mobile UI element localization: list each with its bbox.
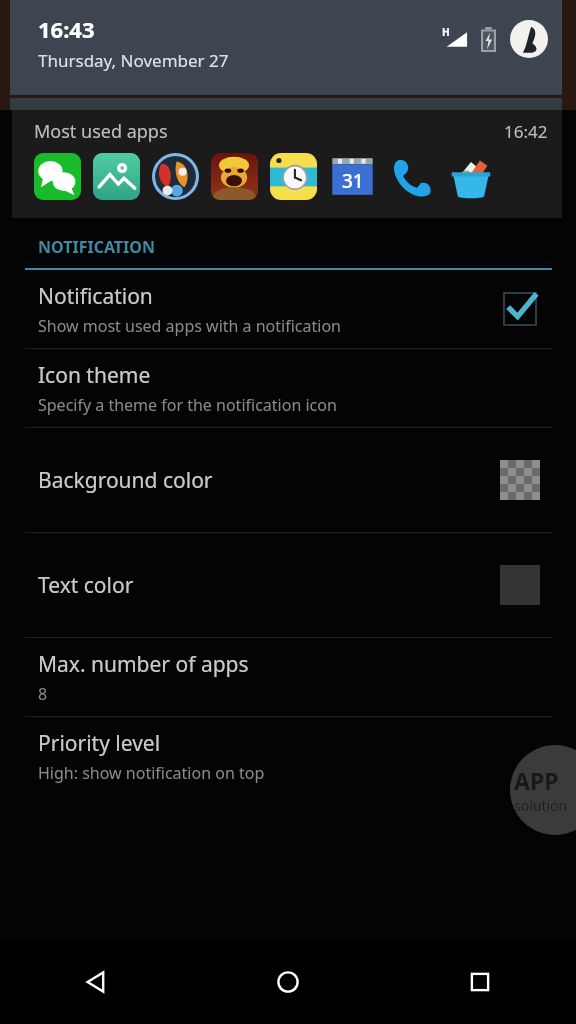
button[interactable]: Background color	[0, 428, 576, 532]
staticText: solution	[514, 796, 568, 815]
button[interactable]: Recent apps	[384, 940, 576, 1024]
staticText: High: show notification on top	[38, 762, 265, 784]
button[interactable]: Clash of Clans	[211, 153, 258, 200]
button[interactable]: WeChat	[34, 153, 81, 200]
staticText: 16:42	[504, 120, 548, 143]
button[interactable]: Back	[0, 940, 192, 1024]
button[interactable]: Store	[447, 153, 494, 200]
button[interactable]: Calendar	[329, 153, 376, 200]
staticText: 31	[342, 168, 364, 194]
staticText: NOTIFICATION	[38, 236, 155, 258]
staticText: APP	[514, 765, 559, 796]
staticText: Specify a theme for the notification ico…	[38, 394, 337, 416]
staticText: Notification	[38, 282, 153, 311]
button[interactable]: Notification	[0, 270, 576, 348]
button[interactable]: Social app	[152, 153, 199, 200]
staticText: H	[442, 25, 450, 39]
button[interactable]: Gallery	[93, 153, 140, 200]
staticText: Text color	[38, 571, 134, 600]
button[interactable]: Max. number of apps	[0, 638, 576, 716]
staticText: Most used apps	[34, 119, 168, 144]
button[interactable]: Icon theme	[0, 349, 576, 427]
staticText: 16:43	[38, 14, 95, 44]
button[interactable]: Home	[192, 940, 384, 1024]
staticText: Icon theme	[38, 361, 151, 390]
button[interactable]: Phone	[388, 153, 435, 200]
staticText: Max. number of apps	[38, 650, 249, 679]
button[interactable]: Timer camera	[270, 153, 317, 200]
staticText: Background color	[38, 466, 213, 495]
button[interactable]: Most used apps	[12, 110, 562, 218]
button[interactable]: Priority level	[0, 717, 576, 795]
staticText: Priority level	[38, 729, 161, 758]
button[interactable]: Text color	[0, 533, 576, 637]
staticText: Thursday, November 27	[38, 49, 229, 72]
staticText: Show most used apps with a notification	[38, 315, 341, 337]
staticText: 8	[38, 683, 48, 705]
